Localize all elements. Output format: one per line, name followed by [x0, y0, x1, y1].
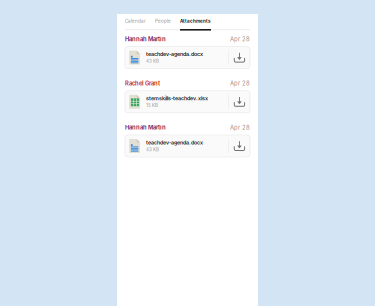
staticText: Attachments — [180, 18, 211, 24]
staticText: 43 KB — [146, 58, 159, 64]
staticText: Apr 28 — [230, 36, 250, 43]
staticText: Hannah Martin — [125, 124, 166, 131]
button[interactable]: Attachments — [180, 18, 211, 24]
staticText: 15 KB — [146, 103, 158, 108]
staticText: Apr 28 — [230, 80, 250, 87]
button[interactable]: Download stemskills-teachdev.xlsx — [229, 91, 250, 113]
button[interactable]: Calendar — [125, 18, 146, 24]
staticText: Calendar — [125, 18, 146, 24]
staticText: People — [155, 18, 171, 24]
button[interactable]: stemskills-teachdev.xlsx — [125, 91, 250, 113]
staticText: 43 KB — [146, 147, 159, 152]
button[interactable]: People — [155, 18, 171, 24]
staticText: teachdev-agenda.docx — [146, 139, 203, 146]
staticText: stemskills-teachdev.xlsx — [146, 95, 208, 102]
staticText: Hannah Martin — [125, 36, 166, 43]
button[interactable]: teachdev-agenda.docx — [125, 135, 250, 157]
button[interactable]: Download teachdev-agenda.docx — [229, 47, 250, 69]
staticText: teachdev-agenda.docx — [146, 51, 203, 57]
staticText: Apr 28 — [230, 124, 250, 131]
button[interactable]: teachdev-agenda.docx — [125, 47, 250, 69]
button[interactable]: Download teachdev-agenda.docx — [229, 135, 250, 157]
staticText: Rachel Grant — [125, 80, 160, 87]
